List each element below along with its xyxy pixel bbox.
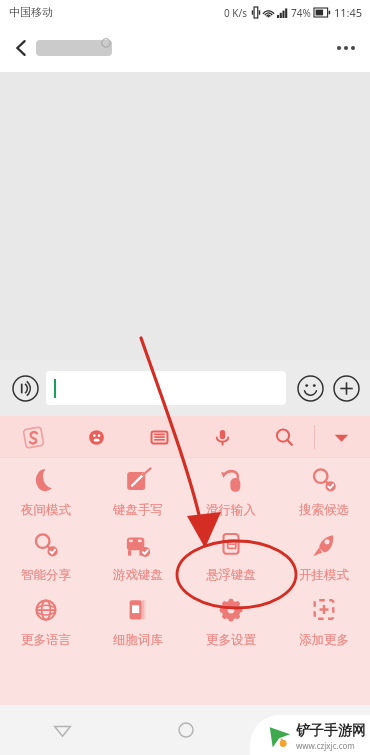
button[interactable]: 滑行输入 [184,466,277,518]
button[interactable]: 添加更多 [277,596,370,648]
button[interactable]: 游戏键盘 [92,531,184,583]
button[interactable]: Back [0,705,124,755]
staticText: 悬浮键盘 [206,567,256,583]
button[interactable]: Search [254,416,314,458]
button[interactable]: 更多设置 [184,596,277,648]
staticText: 键盘手写 [113,502,163,518]
button[interactable]: Expression [65,416,128,458]
staticText: 夜间模式 [21,502,71,518]
staticText: 游戏键盘 [113,567,163,583]
staticText: 开挂模式 [299,567,349,583]
button[interactable]: Home [124,705,247,755]
staticText: 添加更多 [299,632,349,648]
button[interactable]: Keyboard [128,416,191,458]
button[interactable]: 更多语言 [0,596,92,648]
button[interactable]: 搜索候选 [277,466,370,518]
staticText: 更多设置 [206,632,256,648]
button[interactable]: 悬浮键盘 [184,531,277,583]
button[interactable]: Voice message [7,370,43,406]
staticText: 搜索候选 [299,502,349,518]
button[interactable]: Voice input [191,416,254,458]
staticText: 更多语言 [21,632,71,648]
staticText: 中国移动 [9,5,53,19]
button[interactable]: 键盘手写 [92,466,184,518]
staticText: 滑行输入 [206,502,256,518]
button[interactable] [46,371,286,405]
button[interactable]: Sogou input [2,416,65,458]
staticText: 11:45 [334,5,363,20]
button[interactable]: 智能分享 [0,531,92,583]
staticText: 细胞词库 [113,632,163,648]
button[interactable]: 夜间模式 [0,466,92,518]
staticText: www.czjxjc.com [296,740,355,751]
staticText: 铲子手游网 [296,722,366,740]
button[interactable]: 开挂模式 [277,531,370,583]
button[interactable]: Emoji [293,371,327,405]
staticText: 智能分享 [21,567,71,583]
button[interactable]: Collapse panel [315,416,368,458]
button[interactable]: More options [322,24,370,72]
button[interactable]: Recent apps [247,705,370,755]
button[interactable]: More functions [329,371,363,405]
staticText: 0 K/s [224,6,248,20]
button[interactable]: Back [0,27,42,69]
staticText: 74% [291,6,311,20]
button[interactable]: 细胞词库 [92,596,184,648]
